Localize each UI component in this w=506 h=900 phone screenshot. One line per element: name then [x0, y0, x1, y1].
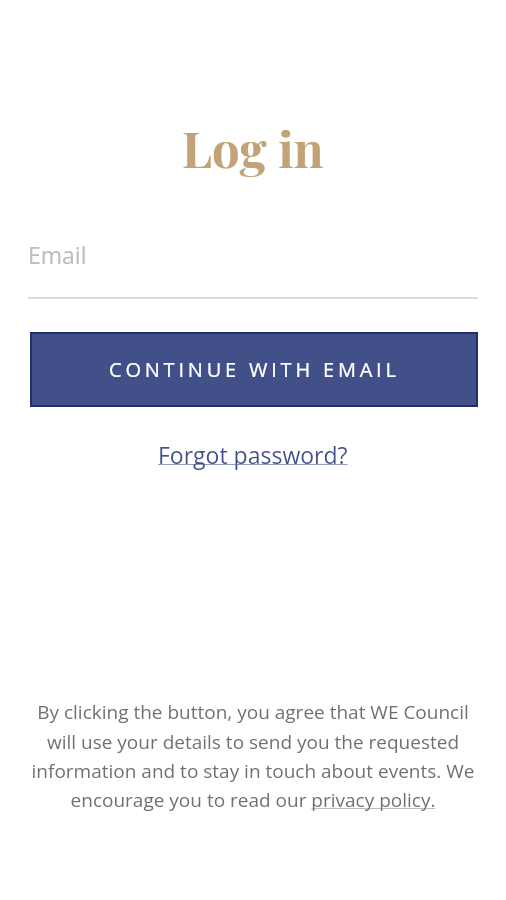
staticText: By clicking the button, you agree that W… [3, 699, 503, 813]
button[interactable]: CONTINUE WITH EMAIL [30, 332, 478, 407]
staticText: Forgot password? [158, 439, 348, 470]
staticText: Email [28, 239, 87, 270]
staticText: Log in [182, 115, 324, 180]
button[interactable]: Forgot password? [158, 439, 348, 470]
staticText: CONTINUE WITH EMAIL [109, 356, 400, 383]
button[interactable]: Email [28, 239, 478, 299]
